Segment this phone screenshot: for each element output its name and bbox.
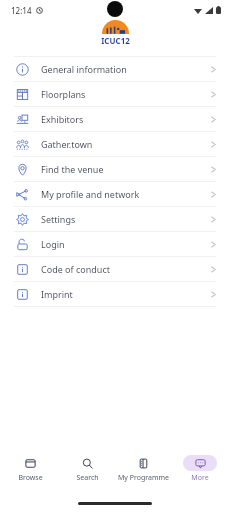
staticText: General information bbox=[41, 63, 127, 75]
button[interactable]: My profile and network bbox=[0, 181, 230, 206]
button[interactable]: Search bbox=[60, 454, 114, 484]
staticText: Browse bbox=[18, 473, 43, 483]
staticText: 12:14 bbox=[11, 5, 32, 16]
staticText: Code of conduct bbox=[41, 263, 110, 275]
staticText: More bbox=[191, 473, 209, 483]
staticText: Search bbox=[76, 473, 99, 483]
staticText: My Programme bbox=[118, 473, 169, 483]
staticText: Find the venue bbox=[41, 163, 104, 175]
staticText: Exhibitors bbox=[41, 113, 84, 125]
button[interactable]: Floorplans bbox=[0, 81, 230, 106]
staticText: Login bbox=[41, 238, 65, 250]
button[interactable]: Settings bbox=[0, 206, 230, 231]
staticText: Gather.town bbox=[41, 138, 93, 150]
button[interactable]: Imprint bbox=[0, 281, 230, 306]
button[interactable]: Browse bbox=[3, 454, 57, 484]
button[interactable]: General information bbox=[0, 56, 230, 81]
staticText: Floorplans bbox=[41, 88, 86, 100]
button[interactable]: Gather.town bbox=[0, 131, 230, 156]
staticText: Imprint bbox=[41, 288, 73, 300]
staticText: ICUC12 bbox=[101, 35, 130, 46]
staticText: Settings bbox=[41, 213, 76, 225]
button[interactable]: My Programme bbox=[116, 454, 170, 484]
button[interactable]: Login bbox=[0, 231, 230, 256]
button[interactable]: Code of conduct bbox=[0, 256, 230, 281]
staticText: My profile and network bbox=[41, 188, 140, 200]
button[interactable]: Exhibitors bbox=[0, 106, 230, 131]
button[interactable]: Find the venue bbox=[0, 156, 230, 181]
button[interactable]: More bbox=[173, 454, 227, 484]
